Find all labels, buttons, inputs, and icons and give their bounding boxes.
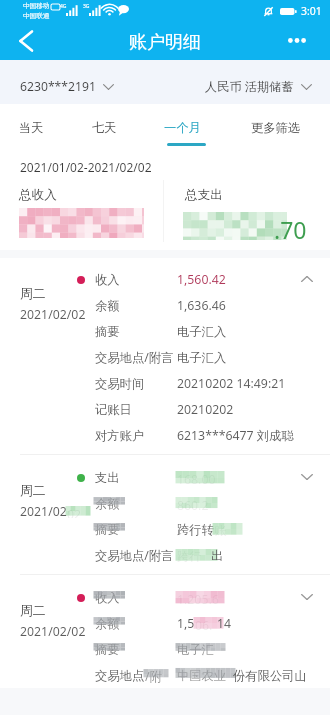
staticText: 168.00	[177, 471, 216, 484]
staticText: 电子汇入	[177, 642, 223, 657]
staticText: 账户	[214, 523, 236, 536]
staticText: 支出	[95, 470, 120, 485]
staticText: 跨行转	[177, 522, 214, 537]
staticText: 更多筛选	[251, 120, 301, 135]
staticText: 摘要	[95, 642, 120, 657]
staticText: 出	[211, 548, 224, 563]
staticText: 份有限公司山东省	[233, 668, 313, 683]
staticText: 账户明细	[129, 31, 201, 54]
button[interactable]: 更多筛选	[251, 104, 301, 148]
staticText: 跨行转	[177, 549, 211, 562]
staticText: 4G	[60, 3, 67, 10]
staticText: 20210202	[177, 401, 234, 418]
staticText: 周二	[20, 603, 46, 619]
staticText: 记账日	[95, 402, 132, 417]
staticText: 2021/01/02-2021/02/02	[20, 159, 152, 175]
button[interactable]: Back	[10, 25, 42, 57]
staticText: 1,560.42	[177, 271, 226, 288]
staticText: 02	[67, 506, 82, 518]
staticText: /附言	[145, 668, 165, 683]
staticText: 七天	[92, 120, 117, 135]
staticText: 摘要	[95, 522, 120, 537]
staticText: 电子汇入	[177, 350, 227, 365]
button[interactable]: 人民币 活期储蓄	[205, 78, 312, 95]
staticText: 3:01	[301, 4, 322, 18]
staticText: 3G	[83, 3, 90, 10]
staticText: 电子汇入	[177, 324, 227, 339]
button[interactable]: 收入	[0, 258, 330, 455]
button[interactable]: 七天	[92, 104, 117, 148]
staticText: 余额	[95, 496, 120, 511]
staticText: 中国移动	[23, 2, 50, 10]
staticText: 余额	[95, 616, 120, 631]
button[interactable]: 收入	[0, 575, 330, 688]
staticText: 1,636.46	[177, 297, 226, 314]
staticText: 收入	[95, 272, 120, 287]
staticText: 2021/02/02	[20, 623, 86, 640]
staticText: 收入	[95, 590, 120, 605]
staticText: 摘要	[95, 324, 120, 339]
staticText: 860.28	[177, 497, 212, 510]
staticText: 周二	[20, 286, 46, 302]
staticText: 1,5	[177, 615, 195, 632]
staticText: 交易地点	[95, 668, 145, 683]
staticText: 14	[217, 615, 232, 632]
staticText: 中国联通	[23, 12, 50, 20]
staticText: 人民币 活期储蓄	[205, 78, 294, 95]
staticText: 06.	[195, 617, 213, 630]
staticText: 交易地点/附言	[95, 349, 174, 366]
staticText: 2021/02	[20, 503, 67, 520]
staticText: .70	[274, 214, 307, 245]
staticText: 周二	[20, 483, 46, 499]
button[interactable]: 当天	[19, 104, 44, 148]
staticText: 20210202 14:49:21	[177, 375, 286, 392]
staticText: 当天	[19, 120, 44, 135]
staticText: 一个月	[164, 120, 201, 135]
staticText: 交易地点/附言	[95, 547, 174, 564]
staticText: 余额	[95, 298, 120, 313]
button[interactable]: 6230***2191	[20, 78, 114, 95]
staticText: 中国农业银	[177, 668, 233, 683]
button[interactable]: 支出	[0, 455, 330, 575]
staticText: 6213***6477 刘成聪	[177, 427, 294, 444]
staticText: 1,205.6	[177, 591, 219, 604]
staticText: 对方账户	[95, 428, 145, 443]
staticText: 总支出	[185, 187, 223, 203]
staticText: 2021/02/02	[20, 306, 86, 323]
staticText: 交易时间	[95, 376, 145, 391]
button[interactable]: 一个月	[164, 104, 203, 148]
staticText: 总收入	[19, 187, 57, 203]
staticText: 6230***2191	[20, 78, 96, 95]
button[interactable]: More options	[282, 25, 312, 55]
